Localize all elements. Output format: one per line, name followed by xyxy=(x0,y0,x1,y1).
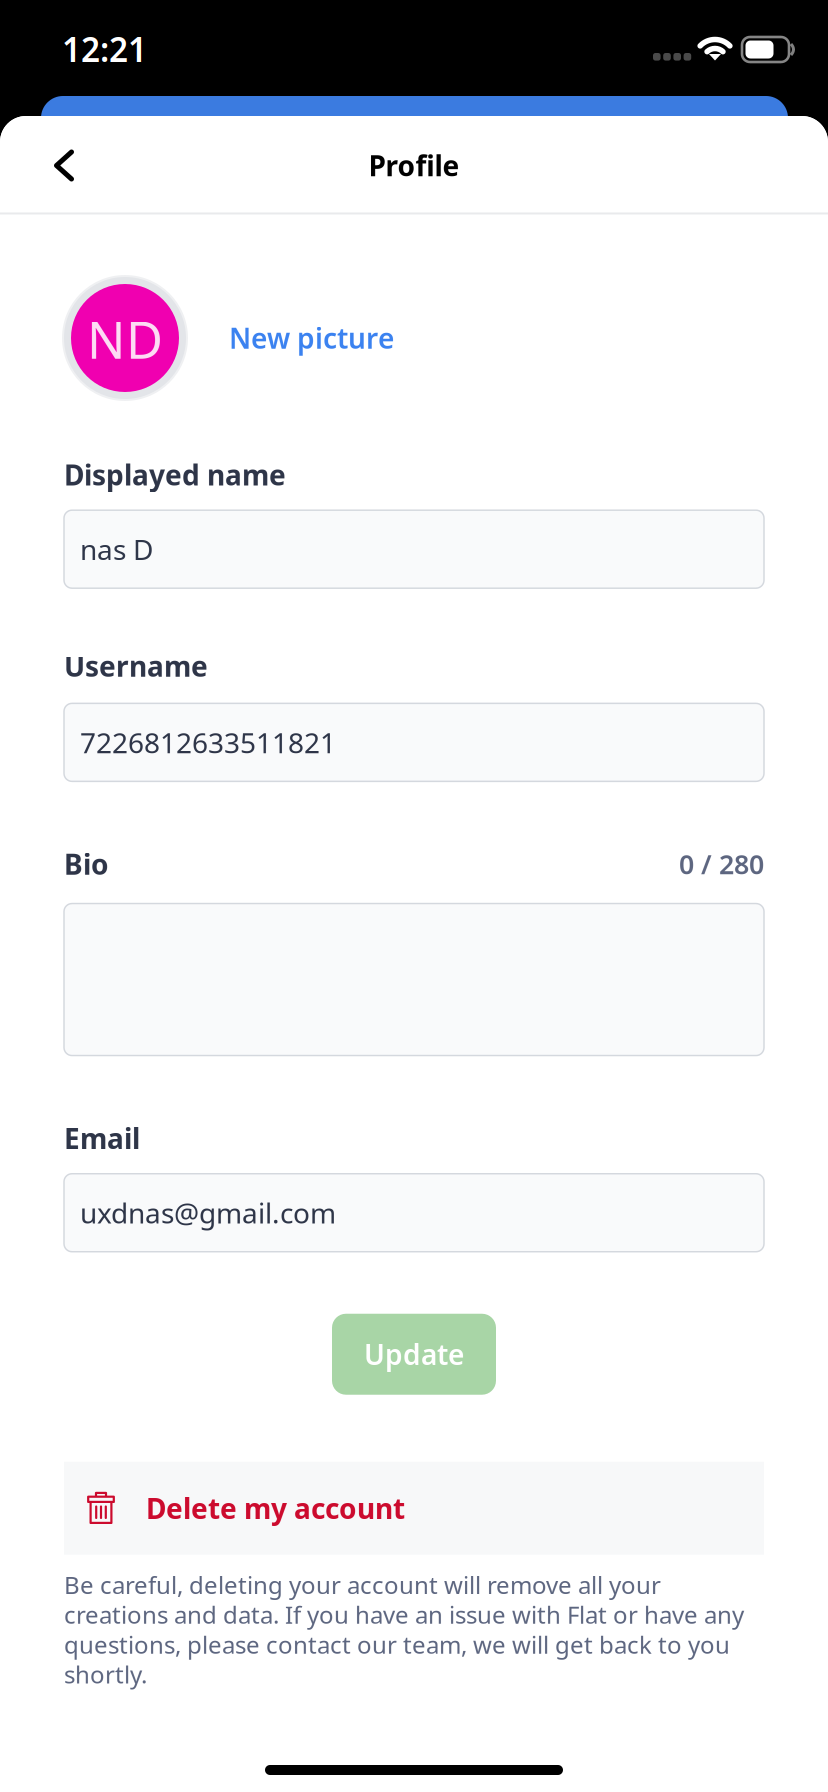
staticText: Delete my account xyxy=(146,1490,405,1527)
staticText: ND xyxy=(87,305,163,373)
staticText: Email xyxy=(64,1119,140,1157)
staticText: Displayed name xyxy=(64,456,286,493)
staticText: Username xyxy=(64,647,208,684)
staticText: Update xyxy=(364,1336,464,1373)
button[interactable]: New picture xyxy=(217,307,406,369)
staticText: Bio xyxy=(64,845,109,883)
button[interactable]: Delete my account xyxy=(64,1462,764,1555)
button[interactable]: Update xyxy=(332,1314,496,1395)
button[interactable]: Back xyxy=(36,134,92,196)
staticText: 7226812633511821 xyxy=(80,724,336,761)
staticText: uxdnas@gmail.com xyxy=(80,1194,336,1231)
staticText: Profile xyxy=(368,147,459,184)
staticText: Be careful, deleting your account will r… xyxy=(64,1569,744,1690)
staticText: New picture xyxy=(229,319,394,357)
staticText: 0 / 280 xyxy=(679,846,764,882)
staticText: 12:21 xyxy=(62,27,147,71)
staticText: nas D xyxy=(80,531,153,568)
